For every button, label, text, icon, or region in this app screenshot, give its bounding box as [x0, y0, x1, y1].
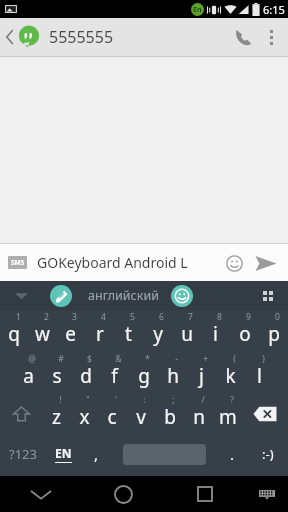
- button[interactable]: 9: [230, 310, 259, 352]
- staticText: a: [23, 363, 34, 389]
- button[interactable]: ?: [213, 393, 242, 434]
- staticText: !: [59, 394, 62, 406]
- staticText: .: [230, 444, 235, 464]
- button[interactable]: Back: [3, 18, 17, 56]
- button[interactable]: .: [216, 434, 248, 474]
- button[interactable]: ': [98, 393, 126, 434]
- button[interactable]: Call: [226, 18, 260, 56]
- staticText: (: [233, 353, 236, 365]
- staticText: *: [145, 353, 150, 365]
- staticText: j: [199, 363, 204, 389]
- staticText: 4: [101, 311, 106, 323]
- staticText: b: [164, 404, 176, 430]
- staticText: #: [58, 353, 64, 365]
- button[interactable]: Recents: [164, 476, 246, 512]
- staticText: d: [80, 363, 92, 389]
- button[interactable]: SMS type: [8, 256, 27, 269]
- staticText: 7: [188, 311, 193, 323]
- button[interactable]: 8: [201, 310, 230, 352]
- button[interactable]: 2: [28, 310, 56, 352]
- button[interactable]: 1: [0, 310, 28, 352]
- staticText: z: [52, 404, 61, 430]
- staticText: 9: [246, 311, 251, 323]
- staticText: EN: [55, 445, 72, 461]
- button[interactable]: !: [42, 393, 70, 434]
- button[interactable]: /: [184, 393, 213, 434]
- staticText: GOKeyboard Android L: [37, 253, 188, 272]
- staticText: ,: [94, 444, 99, 464]
- button[interactable]: Send: [251, 248, 281, 278]
- button[interactable]: (: [216, 352, 245, 393]
- button[interactable]: +: [187, 352, 216, 393]
- button[interactable]: 7: [172, 310, 201, 352]
- staticText: s: [52, 363, 62, 389]
- staticText: :-): [262, 445, 274, 463]
- button[interactable]: Emoji: [171, 285, 193, 307]
- button[interactable]: Theme: [50, 285, 72, 307]
- button[interactable]: $: [71, 352, 100, 393]
- staticText: ': [115, 394, 117, 406]
- button[interactable]: :-): [248, 434, 288, 474]
- button[interactable]: 3: [56, 310, 85, 352]
- button[interactable]: Emoji: [220, 249, 248, 277]
- staticText: u: [181, 321, 193, 347]
- button[interactable]: Back: [0, 476, 82, 512]
- staticText: q: [8, 321, 20, 347]
- staticText: английский: [88, 287, 159, 304]
- staticText: f: [111, 363, 118, 389]
- staticText: En: [193, 5, 202, 15]
- staticText: 1: [16, 311, 21, 323]
- button[interactable]: More: [254, 281, 282, 310]
- button[interactable]: ): [245, 352, 274, 393]
- staticText: 3: [72, 311, 77, 323]
- staticText: h: [167, 363, 179, 389]
- button[interactable]: Backspace: [242, 393, 288, 434]
- staticText: t: [125, 321, 132, 347]
- staticText: m: [219, 404, 237, 430]
- staticText: w: [35, 321, 50, 347]
- button[interactable]: ;: [155, 393, 184, 434]
- button[interactable]: 6: [143, 310, 172, 352]
- staticText: y: [153, 321, 163, 347]
- staticText: 0: [275, 311, 280, 323]
- button[interactable]: Space: [112, 434, 216, 474]
- button[interactable]: @: [14, 352, 42, 393]
- button[interactable]: ": [70, 393, 98, 434]
- button[interactable]: ?123: [0, 434, 46, 474]
- staticText: /: [201, 394, 205, 406]
- staticText: n: [193, 404, 205, 430]
- staticText: ?: [230, 394, 234, 406]
- staticText: SMS: [11, 258, 25, 267]
- button[interactable]: EN: [46, 434, 80, 474]
- staticText: 6:15: [263, 2, 285, 17]
- button[interactable]: Shift: [0, 393, 42, 434]
- button[interactable]: 4: [85, 310, 114, 352]
- staticText: x: [79, 404, 90, 430]
- staticText: g: [138, 363, 150, 389]
- staticText: 8: [217, 311, 222, 323]
- button[interactable]: :: [126, 393, 155, 434]
- staticText: i: [213, 321, 218, 347]
- staticText: -: [175, 353, 178, 365]
- button[interactable]: Switch keyboard: [246, 476, 288, 512]
- staticText: $: [87, 353, 92, 365]
- button[interactable]: *: [129, 352, 158, 393]
- button[interactable]: #: [42, 352, 71, 393]
- button[interactable]: &: [100, 352, 129, 393]
- staticText: p: [268, 321, 280, 347]
- staticText: &: [115, 353, 122, 365]
- staticText: ": [86, 394, 90, 406]
- staticText: l: [257, 363, 262, 389]
- staticText: c: [107, 404, 117, 430]
- staticText: :: [143, 394, 146, 406]
- button[interactable]: Hide toolbar: [6, 281, 36, 310]
- button[interactable]: More options: [260, 18, 282, 56]
- button[interactable]: 5: [114, 310, 143, 352]
- staticText: 5555555: [49, 26, 114, 48]
- button[interactable]: 0: [259, 310, 288, 352]
- button[interactable]: ,: [80, 434, 112, 474]
- staticText: o: [239, 321, 251, 347]
- button[interactable]: -: [158, 352, 187, 393]
- button[interactable]: Home: [82, 476, 164, 512]
- staticText: 6: [159, 311, 164, 323]
